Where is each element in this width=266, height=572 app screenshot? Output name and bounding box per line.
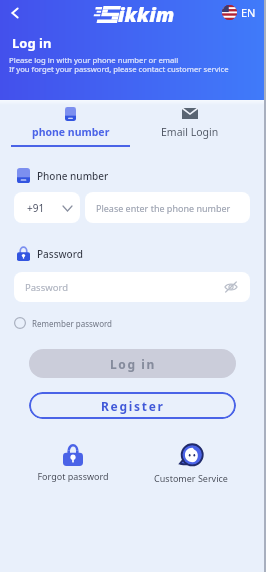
staticText: Please enter the phone number bbox=[96, 202, 231, 214]
button[interactable]: Show password bbox=[223, 279, 239, 295]
staticText: Password bbox=[25, 281, 68, 294]
button[interactable]: Remember password bbox=[14, 317, 113, 329]
staticText: phone number bbox=[32, 125, 110, 139]
staticText: Customer Service bbox=[154, 472, 228, 484]
staticText: Forgot password bbox=[37, 470, 109, 482]
staticText: EN bbox=[241, 5, 256, 20]
button[interactable]: Password bbox=[14, 272, 250, 302]
button[interactable]: Forgot password bbox=[37, 444, 109, 482]
staticText: Log in bbox=[12, 34, 52, 52]
staticText: Phone number bbox=[37, 169, 109, 183]
button[interactable]: +91 bbox=[14, 192, 80, 223]
button[interactable]: phone number bbox=[11, 100, 130, 147]
staticText: Remember password bbox=[32, 318, 113, 329]
button[interactable]: Log in bbox=[29, 349, 236, 378]
staticText: +91 bbox=[27, 201, 45, 215]
button[interactable]: Register bbox=[29, 392, 236, 419]
staticText: Password bbox=[37, 247, 83, 261]
staticText: ikkim bbox=[118, 1, 175, 28]
staticText: Please log in with your phone number or … bbox=[9, 55, 229, 75]
staticText: Email Login bbox=[161, 125, 219, 139]
button[interactable]: Language EN bbox=[222, 5, 256, 20]
staticText: Register bbox=[101, 398, 165, 414]
button[interactable]: Customer Service bbox=[154, 444, 228, 484]
button[interactable]: Back bbox=[4, 2, 26, 24]
button[interactable]: Email Login bbox=[130, 100, 250, 147]
staticText: Log in bbox=[110, 356, 156, 372]
button[interactable]: Please enter the phone number bbox=[85, 192, 250, 223]
